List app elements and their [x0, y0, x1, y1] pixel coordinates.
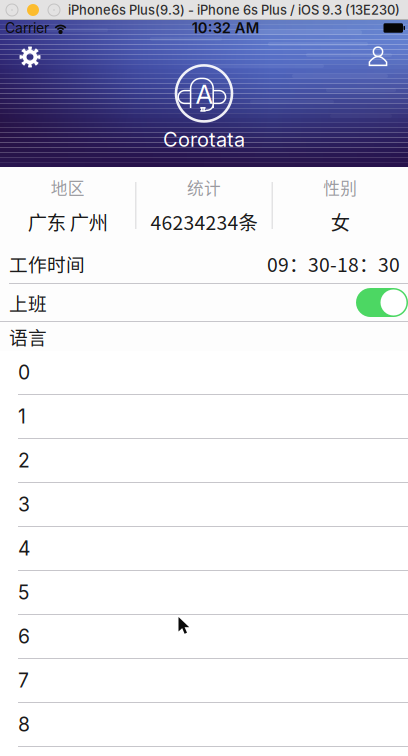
- staticText: 7: [18, 669, 29, 692]
- button[interactable]: 3: [0, 483, 408, 527]
- button[interactable]: 6: [0, 615, 408, 659]
- staticText: 工作时间: [9, 250, 85, 277]
- staticText: Carrier: [5, 19, 49, 36]
- staticText: 6: [18, 625, 30, 648]
- button[interactable]: 工作时间: [0, 244, 408, 284]
- staticText: 0: [18, 361, 30, 384]
- staticText: 2: [18, 449, 30, 472]
- staticText: 5: [18, 581, 29, 604]
- staticText: 10:32 AM: [192, 19, 260, 37]
- button[interactable]: Minimise: [27, 4, 39, 16]
- staticText: 性别: [323, 175, 357, 199]
- staticText: 上班: [9, 289, 47, 316]
- staticText: 09：30-18：30: [267, 249, 400, 277]
- staticText: 地区: [51, 175, 85, 199]
- button[interactable]: 上班: [356, 288, 408, 317]
- button[interactable]: Close: [6, 4, 18, 16]
- staticText: 语言: [9, 323, 47, 350]
- button[interactable]: Zoom: [48, 4, 60, 16]
- staticText: 3: [18, 493, 30, 516]
- button[interactable]: 2: [0, 439, 408, 483]
- staticText: 女: [331, 208, 350, 236]
- button[interactable]: 4: [0, 527, 408, 571]
- button[interactable]: 5: [0, 571, 408, 615]
- staticText: 8: [18, 713, 30, 736]
- staticText: 广东 广州: [28, 208, 108, 236]
- staticText: A: [195, 79, 213, 110]
- button[interactable]: Settings: [12, 41, 48, 73]
- staticText: 统计: [187, 175, 221, 199]
- staticText: 4: [18, 537, 30, 560]
- staticText: iPhone6s Plus(9.3) - iPhone 6s Plus / iO…: [68, 2, 400, 18]
- button[interactable]: 7: [0, 659, 408, 703]
- staticText: 1: [18, 405, 26, 428]
- staticText: Corotata: [163, 127, 245, 152]
- staticText: 46234234条: [150, 208, 257, 236]
- button[interactable]: 8: [0, 703, 408, 747]
- button[interactable]: 0: [0, 351, 408, 395]
- button[interactable]: Profile: [360, 41, 396, 73]
- button[interactable]: 1: [0, 395, 408, 439]
